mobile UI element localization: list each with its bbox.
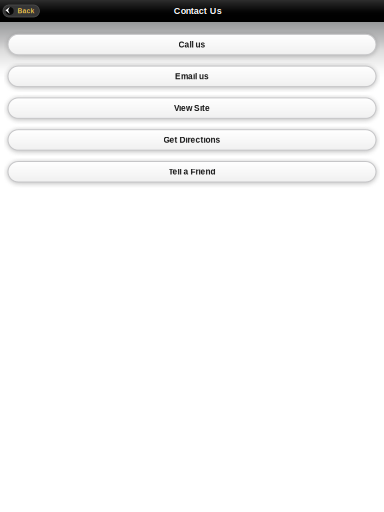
button[interactable]: Call us bbox=[8, 34, 376, 55]
staticText: Email us bbox=[175, 72, 209, 81]
button[interactable]: Email us bbox=[8, 66, 376, 87]
button[interactable]: View Site bbox=[8, 98, 376, 118]
staticText: Back bbox=[17, 7, 34, 15]
staticText: Tell a Friend bbox=[168, 167, 215, 176]
staticText: Get Directions bbox=[163, 135, 220, 144]
button[interactable]: Tell a Friend bbox=[8, 161, 376, 182]
staticText: Call us bbox=[178, 40, 205, 49]
button[interactable]: Get Directions bbox=[8, 130, 376, 150]
button[interactable]: Back bbox=[3, 5, 39, 17]
staticText: Contact Us bbox=[174, 6, 222, 16]
staticText: View Site bbox=[174, 103, 210, 113]
